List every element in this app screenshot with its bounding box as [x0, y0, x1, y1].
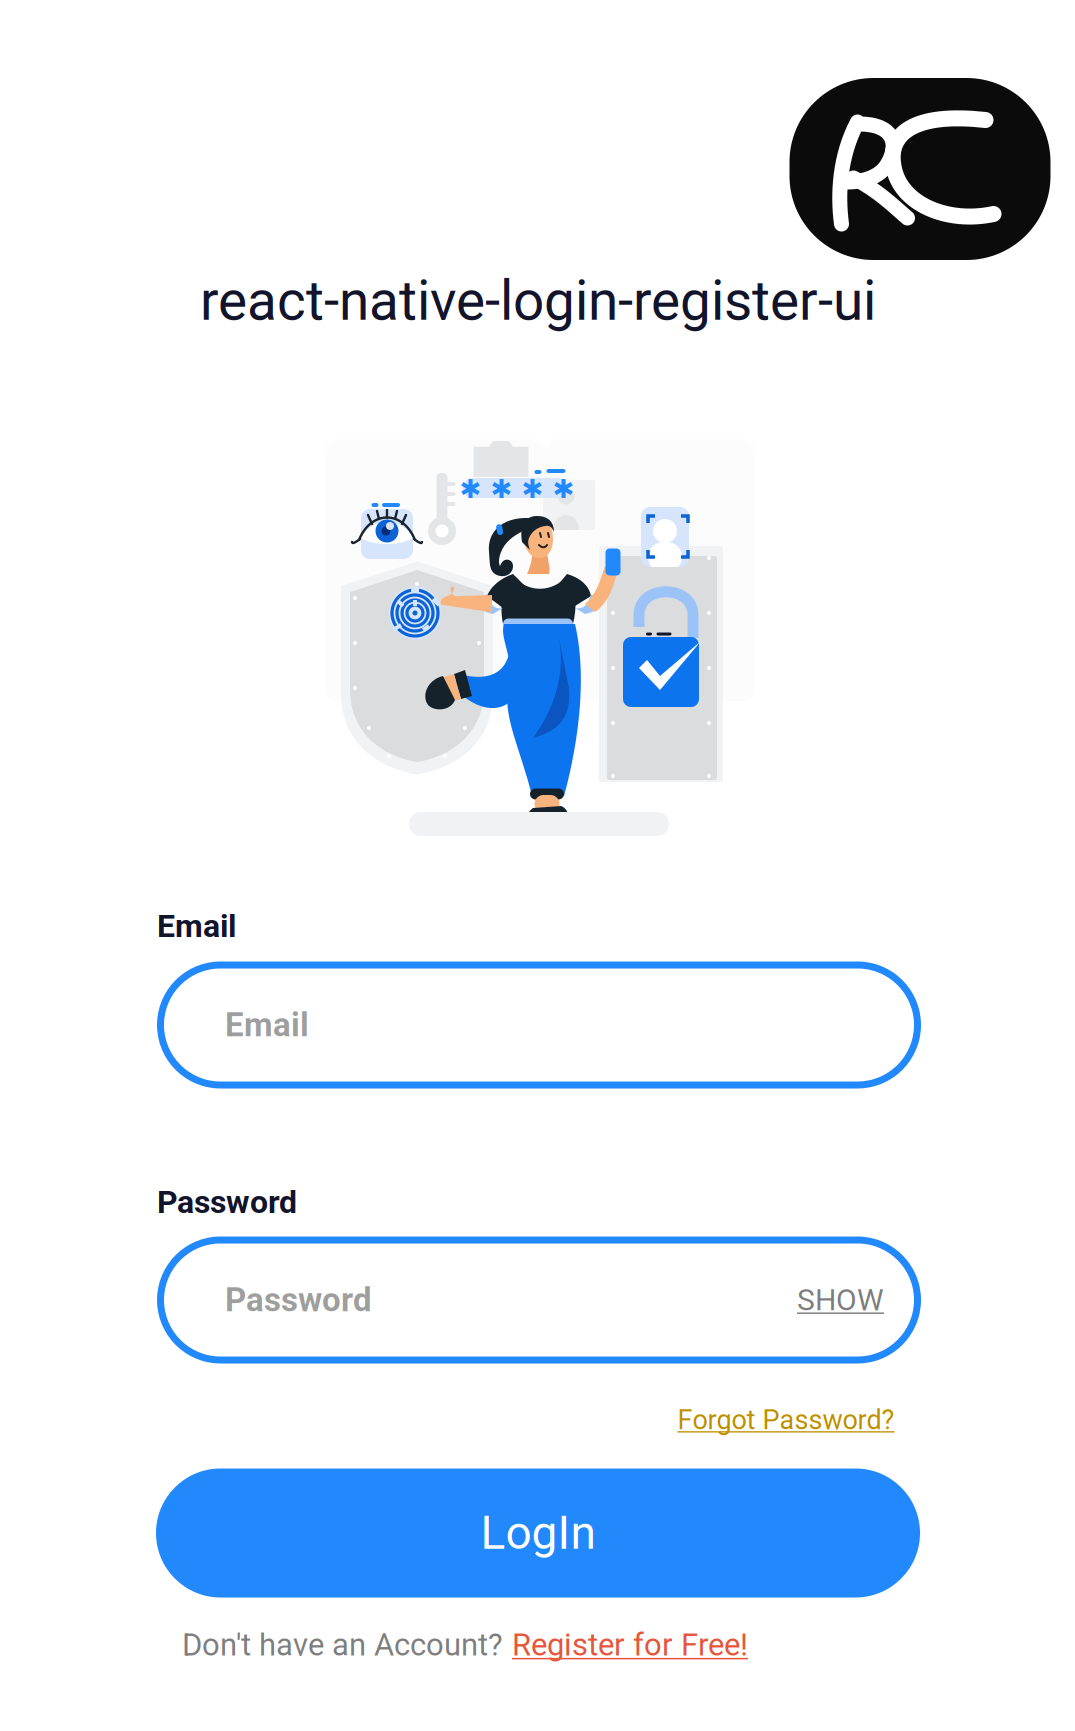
button[interactable]: Email	[157, 961, 921, 1088]
button[interactable]: LogIn	[156, 1468, 920, 1597]
staticText: ✱	[459, 474, 481, 504]
staticText: Password	[157, 1183, 297, 1221]
staticText: SHOW	[797, 1282, 884, 1318]
staticText: Email	[157, 907, 236, 945]
staticText: ✱	[552, 474, 574, 504]
staticText: Register for Free!	[512, 1627, 748, 1663]
button[interactable]: Forgot Password?	[677, 1404, 894, 1436]
staticText: ✱	[490, 474, 512, 504]
staticText: react-native-login-register-ui	[200, 269, 876, 333]
button[interactable]: Register for Free!	[512, 1627, 748, 1663]
button[interactable]: Password	[157, 1236, 921, 1363]
staticText: Don't have an Account?	[182, 1627, 503, 1663]
staticText: Password	[225, 1281, 372, 1319]
staticText: LogIn	[480, 1506, 595, 1560]
staticText: Forgot Password?	[677, 1404, 894, 1436]
staticText: ✱	[521, 474, 543, 504]
staticText: Email	[225, 1006, 309, 1044]
button[interactable]: App logo	[789, 78, 1050, 260]
